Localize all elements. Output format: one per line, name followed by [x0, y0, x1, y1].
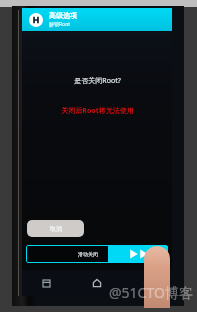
button[interactable]: App logo	[22, 8, 172, 31]
staticText: 取消	[50, 225, 62, 233]
other: App logo	[29, 13, 43, 27]
staticText: 滑动关闭	[78, 251, 98, 257]
staticText: @51CTO博客	[109, 283, 193, 302]
staticText: 高级选项	[49, 11, 77, 20]
staticText: 是否关闭Root?	[74, 76, 121, 86]
button[interactable]: 滑动关闭	[26, 245, 168, 263]
button[interactable]: Home	[89, 275, 105, 291]
button[interactable]: Back	[140, 275, 156, 291]
staticText: 解锁Root	[49, 21, 70, 28]
button[interactable]: 取消	[27, 220, 84, 237]
button[interactable]: Recent apps	[38, 275, 54, 291]
staticText: 关闭后Root将无法使用	[61, 106, 134, 116]
other: Slide to confirm	[129, 248, 159, 260]
